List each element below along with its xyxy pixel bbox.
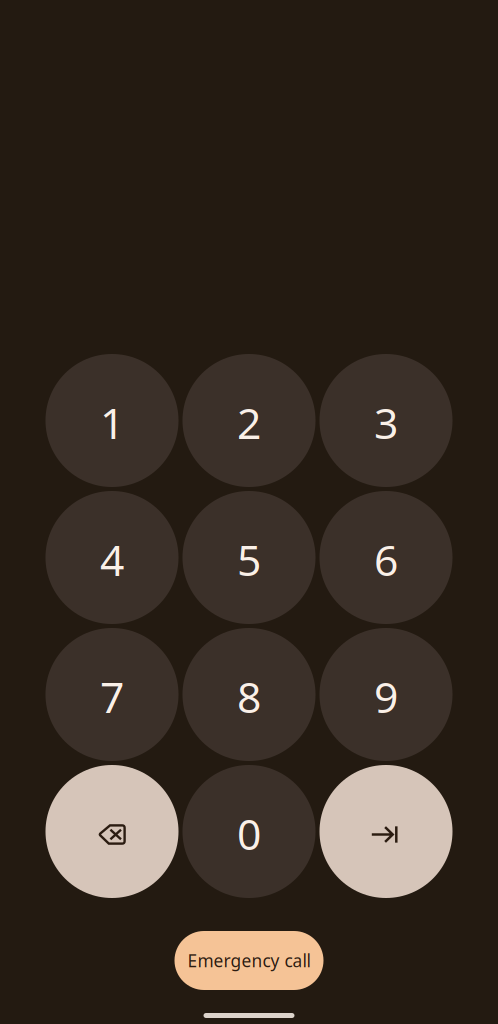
staticText: 6 <box>374 531 398 588</box>
staticText: 5 <box>237 531 261 588</box>
staticText: 7 <box>100 668 124 725</box>
staticText: 0 <box>237 805 261 862</box>
staticText: 3 <box>374 394 398 451</box>
staticText: 2 <box>237 394 261 451</box>
button[interactable]: 2 <box>182 354 315 487</box>
button[interactable]: 0 <box>182 765 315 898</box>
button[interactable]: 7 <box>45 628 178 761</box>
staticText: 4 <box>100 531 124 588</box>
button[interactable]: Delete <box>45 765 178 898</box>
staticText: 8 <box>237 668 261 725</box>
button[interactable]: 3 <box>319 354 452 487</box>
button[interactable]: 5 <box>182 491 315 624</box>
button[interactable]: 8 <box>182 628 315 761</box>
staticText: Emergency call <box>187 949 310 972</box>
button[interactable]: 4 <box>45 491 178 624</box>
staticText: 1 <box>100 394 124 451</box>
button[interactable]: 6 <box>319 491 452 624</box>
button[interactable]: Emergency call <box>174 931 323 990</box>
button[interactable]: 9 <box>319 628 452 761</box>
button[interactable]: Enter PIN <box>319 765 452 898</box>
staticText: 9 <box>374 668 398 725</box>
button[interactable]: 1 <box>45 354 178 487</box>
